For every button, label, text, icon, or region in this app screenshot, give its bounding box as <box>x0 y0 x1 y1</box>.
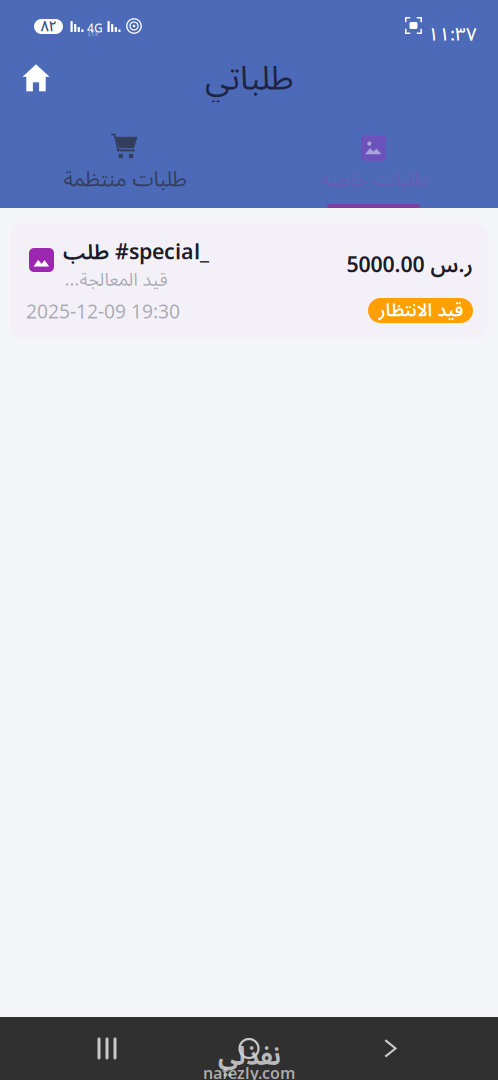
staticText: قيد الانتظار <box>378 291 463 329</box>
button[interactable]: ‎طلب #special_ <box>0 208 498 338</box>
button[interactable]: Back <box>356 1017 426 1080</box>
staticText: نفذلي <box>217 1030 280 1080</box>
staticText: ٨٢ <box>40 11 56 42</box>
staticText: ١١:٣٧ <box>428 15 477 54</box>
staticText: قيد المعالجة... <box>64 261 167 299</box>
staticText: طلبات منتظمة <box>63 157 186 202</box>
staticText: LTE <box>88 27 99 41</box>
button[interactable]: طلبات منتظمة <box>0 102 249 208</box>
staticText: 2025-12-09 19:30 <box>26 292 180 333</box>
button[interactable]: طلبات خاصة <box>249 102 498 208</box>
button[interactable]: Recent apps <box>72 1017 142 1080</box>
staticText: ‎طلب #special_ <box>63 230 209 275</box>
staticText: 4G <box>87 16 103 41</box>
staticText: طلبات خاصة <box>319 157 427 202</box>
staticText: ر.س 5000.00 <box>346 243 472 288</box>
button[interactable]: Home <box>214 1017 284 1080</box>
staticText: طلباتي <box>204 44 293 114</box>
staticText: nafezly.com <box>203 1057 295 1080</box>
button[interactable]: Home <box>10 56 62 100</box>
